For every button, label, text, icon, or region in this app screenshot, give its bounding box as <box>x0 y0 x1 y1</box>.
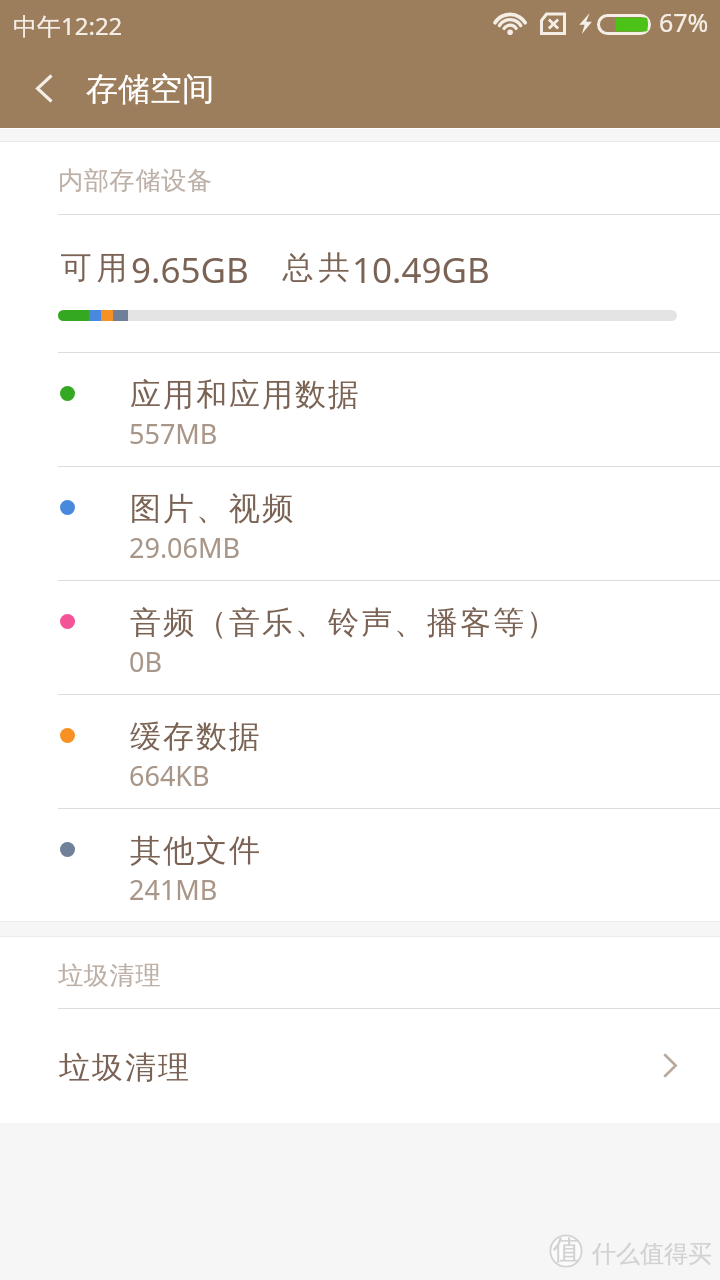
staticText: 值 <box>553 1233 580 1267</box>
staticText: 图片、视频 <box>129 489 294 528</box>
button[interactable]: 应用和应用数据 <box>0 352 720 466</box>
staticText: 什么值得买 <box>592 1239 712 1269</box>
staticText: 内部存储设备 <box>58 165 213 196</box>
staticText: 10.49GB <box>352 246 490 294</box>
staticText: 总共 <box>280 248 352 287</box>
staticText: 557MB <box>129 415 218 452</box>
button[interactable]: 缓存数据 <box>0 694 720 808</box>
button[interactable]: 垃圾清理 <box>0 1008 720 1123</box>
staticText: 中午12:22 <box>13 9 123 42</box>
staticText: 垃圾清理 <box>58 960 162 991</box>
staticText: 29.06MB <box>129 529 241 566</box>
staticText: 可用 <box>58 248 130 287</box>
staticText: 0B <box>129 643 162 680</box>
staticText: 垃圾清理 <box>58 1048 190 1087</box>
staticText: 其他文件 <box>129 831 261 870</box>
button[interactable]: 图片、视频 <box>0 466 720 580</box>
button[interactable]: 其他文件 <box>0 808 720 922</box>
staticText: 音频（音乐、铃声、播客等） <box>129 603 558 642</box>
staticText: 9.65GB <box>131 246 249 294</box>
staticText: 应用和应用数据 <box>129 375 360 414</box>
staticText: 67% <box>659 5 709 39</box>
staticText: 241MB <box>129 871 218 908</box>
staticText: 664KB <box>129 757 210 794</box>
button[interactable]: Back <box>8 52 80 124</box>
staticText: 存储空间 <box>86 69 214 109</box>
staticText: 缓存数据 <box>129 717 261 756</box>
button[interactable]: 音频（音乐、铃声、播客等） <box>0 580 720 694</box>
